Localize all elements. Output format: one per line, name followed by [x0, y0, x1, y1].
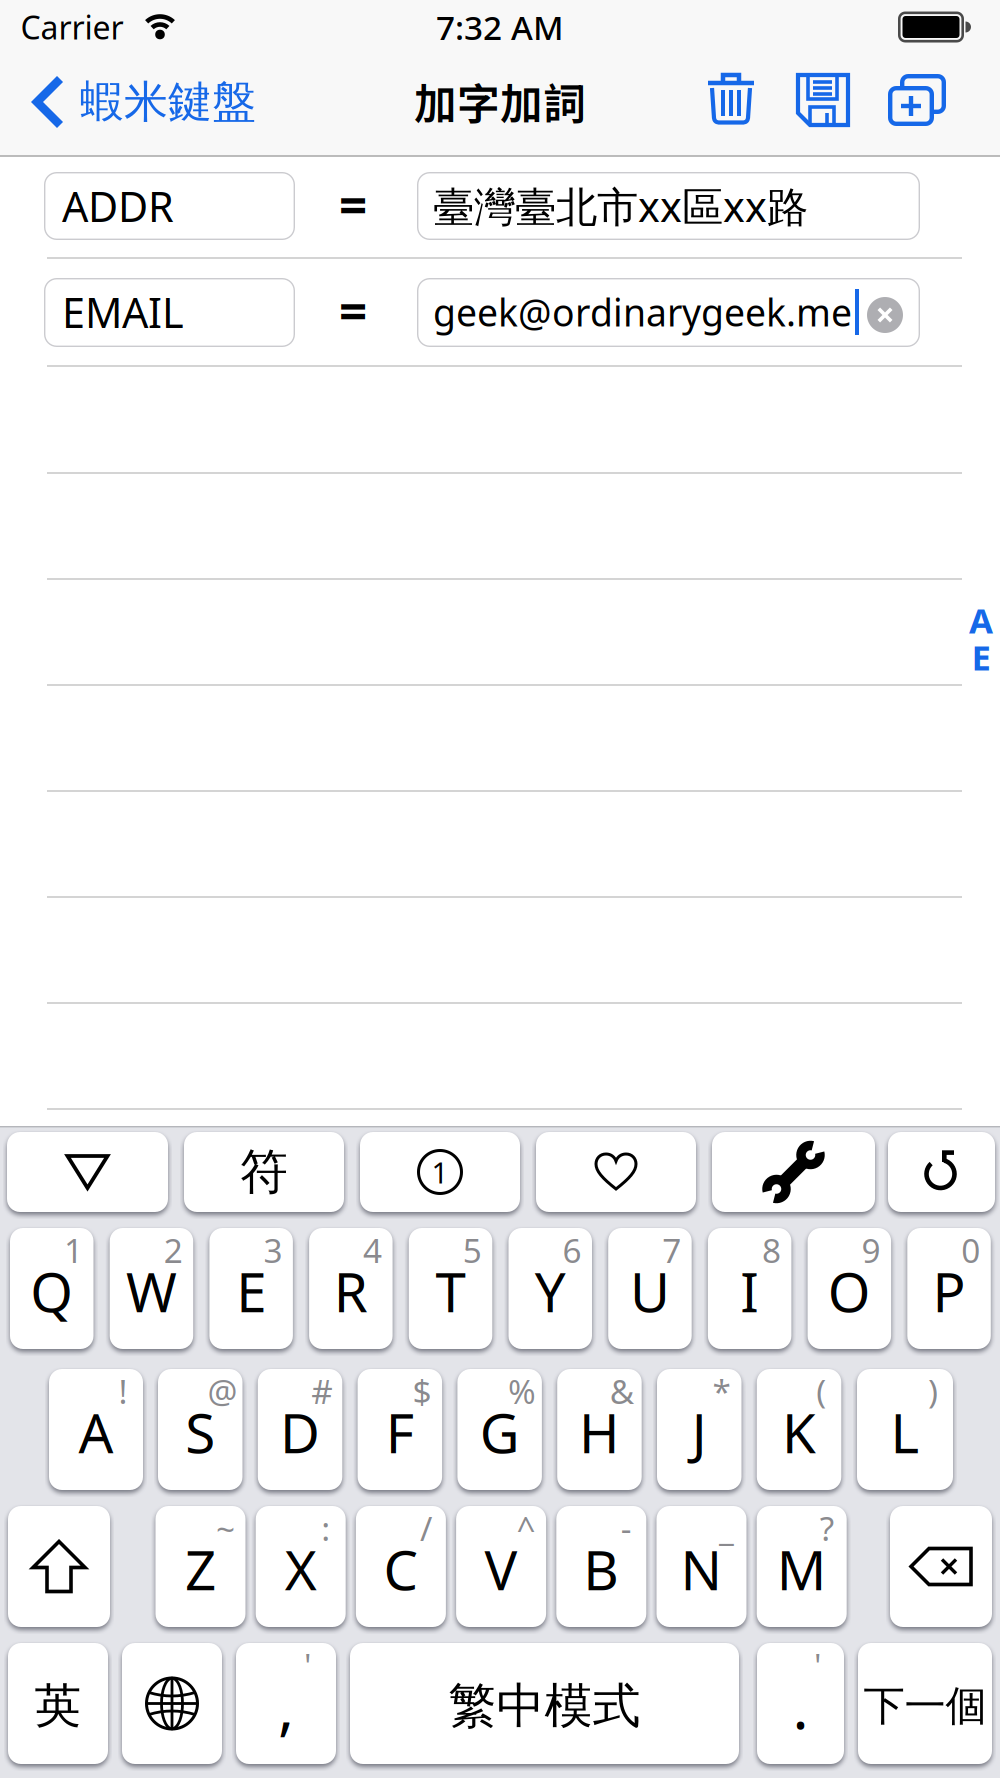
button[interactable]: 下一個	[858, 1643, 992, 1764]
staticText: L	[890, 1396, 919, 1468]
button[interactable]: 英	[8, 1643, 108, 1764]
staticText: &	[610, 1369, 634, 1413]
staticText: S	[185, 1396, 215, 1468]
staticText: C	[383, 1533, 418, 1605]
button[interactable]: 蝦米鍵盤	[32, 75, 256, 129]
button[interactable]: J	[657, 1369, 741, 1490]
staticText: I	[740, 1255, 759, 1327]
staticText: X	[285, 1533, 317, 1605]
staticText: J	[692, 1396, 707, 1468]
button[interactable]: Y	[508, 1228, 592, 1349]
button[interactable]: S	[158, 1369, 242, 1490]
button[interactable]: R	[309, 1228, 393, 1349]
staticText: F	[386, 1396, 414, 1468]
staticText: H	[579, 1396, 620, 1468]
button[interactable]: C	[356, 1506, 446, 1627]
button[interactable]	[712, 1132, 875, 1212]
button[interactable]: V	[456, 1506, 546, 1627]
button[interactable]: M	[757, 1506, 847, 1627]
button[interactable]: Q	[10, 1228, 93, 1349]
staticText: E	[236, 1255, 266, 1327]
staticText: 9	[862, 1228, 881, 1272]
staticText: 3	[263, 1228, 282, 1272]
button[interactable]: E	[209, 1228, 293, 1349]
staticText: 7:32 AM	[436, 5, 564, 49]
staticText: 1	[431, 1152, 448, 1191]
button[interactable]: L	[857, 1369, 953, 1490]
button[interactable]	[7, 1132, 168, 1212]
staticText: R	[334, 1255, 368, 1327]
staticText: Q	[30, 1255, 73, 1327]
button[interactable]: U	[608, 1228, 692, 1349]
staticText: (	[816, 1369, 826, 1413]
staticText: 0	[961, 1228, 980, 1272]
staticText: @	[207, 1369, 237, 1413]
button[interactable]	[417, 172, 920, 240]
button[interactable]: A	[969, 597, 993, 643]
staticText: 繁中模式	[448, 1676, 640, 1735]
button[interactable]	[417, 278, 920, 347]
button[interactable]: D	[258, 1369, 342, 1490]
staticText: 蝦米鍵盤	[80, 75, 256, 129]
staticText: ^	[517, 1506, 536, 1550]
staticText: W	[126, 1255, 177, 1327]
staticText: ~	[216, 1506, 235, 1550]
button[interactable]: F	[358, 1369, 442, 1490]
button[interactable]: P	[907, 1228, 991, 1349]
staticText: 5	[463, 1228, 482, 1272]
button[interactable]: K	[757, 1369, 841, 1490]
staticText: ,	[278, 1666, 294, 1746]
staticText: 英	[34, 1677, 81, 1735]
staticText: U	[630, 1255, 670, 1327]
staticText: A	[969, 597, 993, 643]
button[interactable]: I	[708, 1228, 791, 1349]
staticText: 4	[363, 1228, 382, 1272]
button[interactable]: H	[557, 1369, 642, 1490]
staticText: =	[339, 277, 367, 343]
button[interactable]: N	[656, 1506, 746, 1627]
staticText: K	[782, 1396, 816, 1468]
staticText: V	[485, 1533, 518, 1605]
button[interactable]: A	[49, 1369, 143, 1490]
button[interactable]	[888, 1132, 995, 1212]
staticText: Y	[535, 1255, 566, 1327]
staticText: G	[480, 1396, 520, 1468]
staticText: D	[280, 1396, 320, 1468]
button[interactable]: 符	[184, 1132, 344, 1212]
staticText: Carrier	[20, 6, 123, 48]
button[interactable]	[699, 69, 763, 133]
button[interactable]	[8, 1506, 110, 1627]
staticText: 臺灣臺北市xx區xx路	[433, 179, 808, 233]
staticText: A	[78, 1396, 113, 1468]
button[interactable]	[44, 172, 295, 240]
staticText: !	[118, 1369, 127, 1413]
button[interactable]: .	[757, 1643, 844, 1764]
staticText: ?	[820, 1506, 834, 1550]
button[interactable]	[122, 1643, 222, 1764]
button[interactable]	[536, 1132, 696, 1212]
button[interactable]: X	[256, 1506, 346, 1627]
staticText: '	[304, 1643, 312, 1687]
staticText: M	[777, 1533, 827, 1605]
button[interactable]: O	[808, 1228, 891, 1349]
staticText: $	[413, 1369, 432, 1413]
staticText: E	[971, 634, 990, 680]
button[interactable]: B	[556, 1506, 646, 1627]
staticText: B	[583, 1533, 619, 1605]
button[interactable]: 繁中模式	[350, 1643, 739, 1764]
staticText: /	[420, 1506, 432, 1550]
button[interactable]: E	[971, 634, 990, 680]
button[interactable]: ,	[236, 1643, 336, 1764]
button[interactable]	[890, 1506, 992, 1627]
button[interactable]	[44, 278, 295, 347]
button[interactable]: W	[110, 1228, 193, 1349]
staticText: geek@ordinarygeek.me	[433, 287, 852, 337]
button[interactable]	[791, 68, 855, 132]
button[interactable]	[867, 297, 903, 333]
staticText: =	[339, 171, 367, 237]
button[interactable]: T	[409, 1228, 492, 1349]
button[interactable]: Z	[155, 1506, 245, 1627]
button[interactable]: 1	[360, 1132, 520, 1212]
button[interactable]: G	[457, 1369, 542, 1490]
button[interactable]	[884, 68, 948, 132]
